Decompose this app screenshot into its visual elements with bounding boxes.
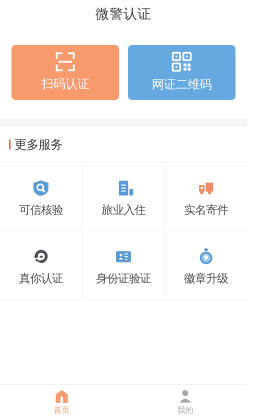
button[interactable]: 真你认证 [0, 231, 82, 299]
staticText: 网证二维码 [152, 77, 212, 92]
staticText: 可信核验 [19, 203, 63, 217]
button[interactable]: 扫码认证 [11, 45, 119, 100]
staticText: 实名寄件 [184, 203, 228, 217]
button[interactable]: 可信核验 [0, 163, 82, 231]
button[interactable]: 实名寄件 [165, 163, 247, 231]
staticText: 身份证验证 [96, 271, 151, 286]
button[interactable]: 徽章升级 [165, 231, 247, 299]
staticText: 更多服务 [15, 137, 63, 152]
button[interactable]: 我的 [123, 385, 247, 420]
staticText: 徽章升级 [184, 271, 228, 286]
button[interactable]: 首页 [0, 385, 123, 420]
staticText: 真你认证 [19, 271, 63, 286]
button[interactable]: 网证二维码 [128, 45, 235, 100]
button[interactable]: 身份证验证 [82, 231, 164, 299]
staticText: 微警认证 [95, 5, 151, 22]
staticText: 旅业入住 [101, 203, 145, 217]
staticText: 我的 [177, 405, 193, 415]
button[interactable]: 旅业入住 [82, 163, 164, 231]
staticText: 首页 [54, 405, 70, 415]
staticText: 扫码认证 [41, 76, 89, 92]
